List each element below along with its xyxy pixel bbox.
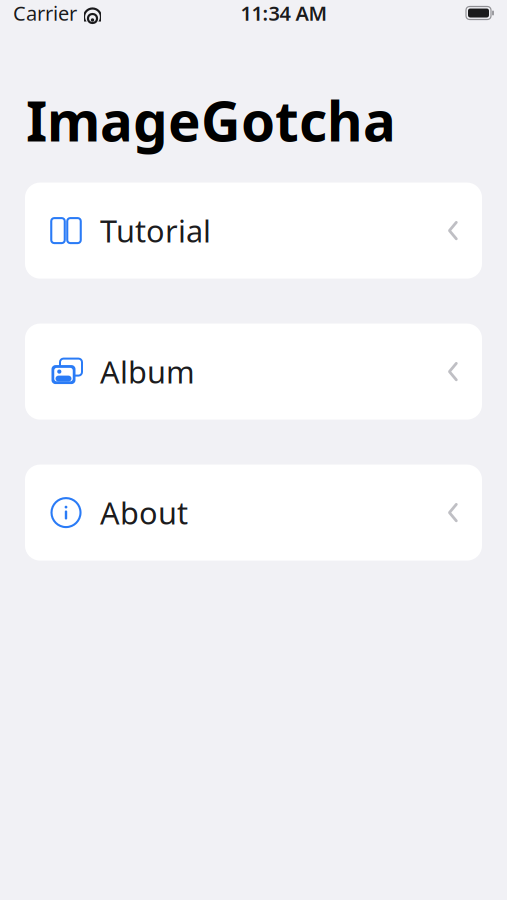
button[interactable]: Album xyxy=(25,324,482,420)
button[interactable]: Tutorial xyxy=(25,183,482,279)
button[interactable]: About xyxy=(25,465,482,561)
staticText: Tutorial xyxy=(100,210,211,251)
staticText: Album xyxy=(100,351,195,392)
staticText: ImageGotcha xyxy=(26,84,396,157)
staticText: About xyxy=(100,492,188,533)
staticText: 11:34 AM xyxy=(240,0,327,26)
staticText: Carrier xyxy=(13,0,77,26)
